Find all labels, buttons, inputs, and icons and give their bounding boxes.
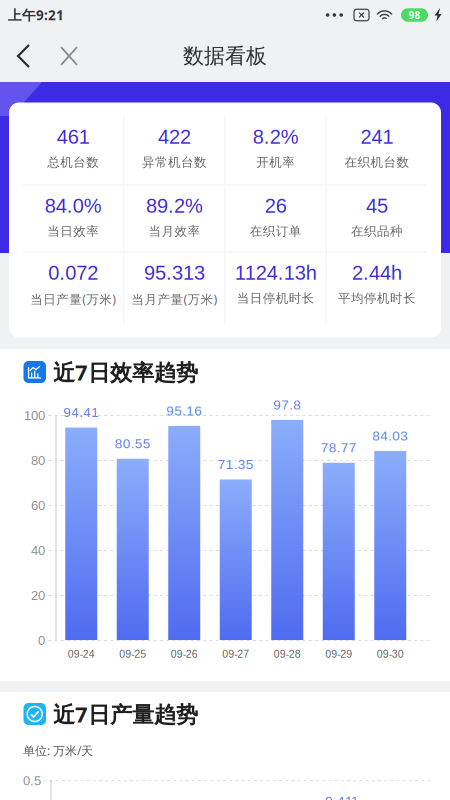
staticText: 2.44h bbox=[352, 262, 402, 284]
staticText: 97.8 bbox=[273, 397, 301, 412]
staticText: 09-29 bbox=[325, 648, 352, 660]
staticText: 0 bbox=[38, 633, 45, 648]
staticText: 当日产量(万米) bbox=[30, 290, 116, 307]
staticText: 09-28 bbox=[274, 648, 301, 660]
button[interactable]: 关闭 bbox=[54, 42, 84, 70]
staticText: 94.41 bbox=[63, 405, 99, 420]
staticText: 当日效率 bbox=[47, 223, 99, 239]
staticText: 8.2% bbox=[253, 126, 299, 148]
staticText: 当月产量(万米) bbox=[131, 290, 217, 307]
staticText: 100 bbox=[24, 408, 45, 423]
staticText: 数据看板 bbox=[183, 43, 267, 69]
staticText: 45 bbox=[366, 195, 388, 217]
staticText: 近7日产量趋势 bbox=[53, 699, 198, 729]
staticText: 80.55 bbox=[115, 436, 151, 451]
staticText: 1124.13h bbox=[235, 262, 317, 284]
staticText: 241 bbox=[360, 126, 393, 148]
staticText: 40 bbox=[31, 543, 45, 558]
staticText: 84.03 bbox=[372, 428, 408, 443]
staticText: 09-25 bbox=[119, 648, 146, 660]
staticText: 78.77 bbox=[321, 440, 357, 455]
staticText: 0.5 bbox=[23, 773, 41, 788]
staticText: 71.35 bbox=[218, 457, 254, 472]
staticText: 开机率 bbox=[256, 154, 295, 170]
staticText: 60 bbox=[31, 498, 45, 513]
staticText: 09-24 bbox=[68, 648, 95, 660]
staticText: 84.0% bbox=[45, 195, 102, 217]
staticText: 当日停机时长 bbox=[237, 290, 315, 306]
staticText: 89.2% bbox=[146, 195, 203, 217]
staticText: 98 bbox=[408, 8, 420, 22]
staticText: 在织订单 bbox=[250, 223, 302, 239]
staticText: 80 bbox=[31, 453, 45, 468]
staticText: 上午9:21 bbox=[8, 6, 64, 24]
staticText: 单位: 万米/天 bbox=[23, 742, 93, 759]
staticText: 异常机台数 bbox=[142, 154, 207, 170]
staticText: 26 bbox=[265, 195, 287, 217]
staticText: 20 bbox=[31, 588, 45, 603]
staticText: 在织品种 bbox=[351, 223, 403, 239]
staticText: 当月效率 bbox=[148, 223, 200, 239]
staticText: 在织机台数 bbox=[344, 154, 409, 170]
button[interactable]: 返回 bbox=[10, 42, 40, 70]
staticText: 95.16 bbox=[166, 403, 202, 418]
staticText: 09-27 bbox=[222, 648, 249, 660]
staticText: 平均停机时长 bbox=[338, 290, 416, 306]
staticText: 0.411 bbox=[325, 793, 359, 800]
staticText: 0.072 bbox=[48, 262, 98, 284]
staticText: 422 bbox=[158, 126, 191, 148]
staticText: 09-30 bbox=[377, 648, 404, 660]
staticText: 09-26 bbox=[171, 648, 198, 660]
staticText: 近7日效率趋势 bbox=[53, 357, 198, 387]
staticText: 总机台数 bbox=[47, 154, 99, 170]
staticText: 95.313 bbox=[144, 262, 205, 284]
staticText: 461 bbox=[57, 126, 90, 148]
